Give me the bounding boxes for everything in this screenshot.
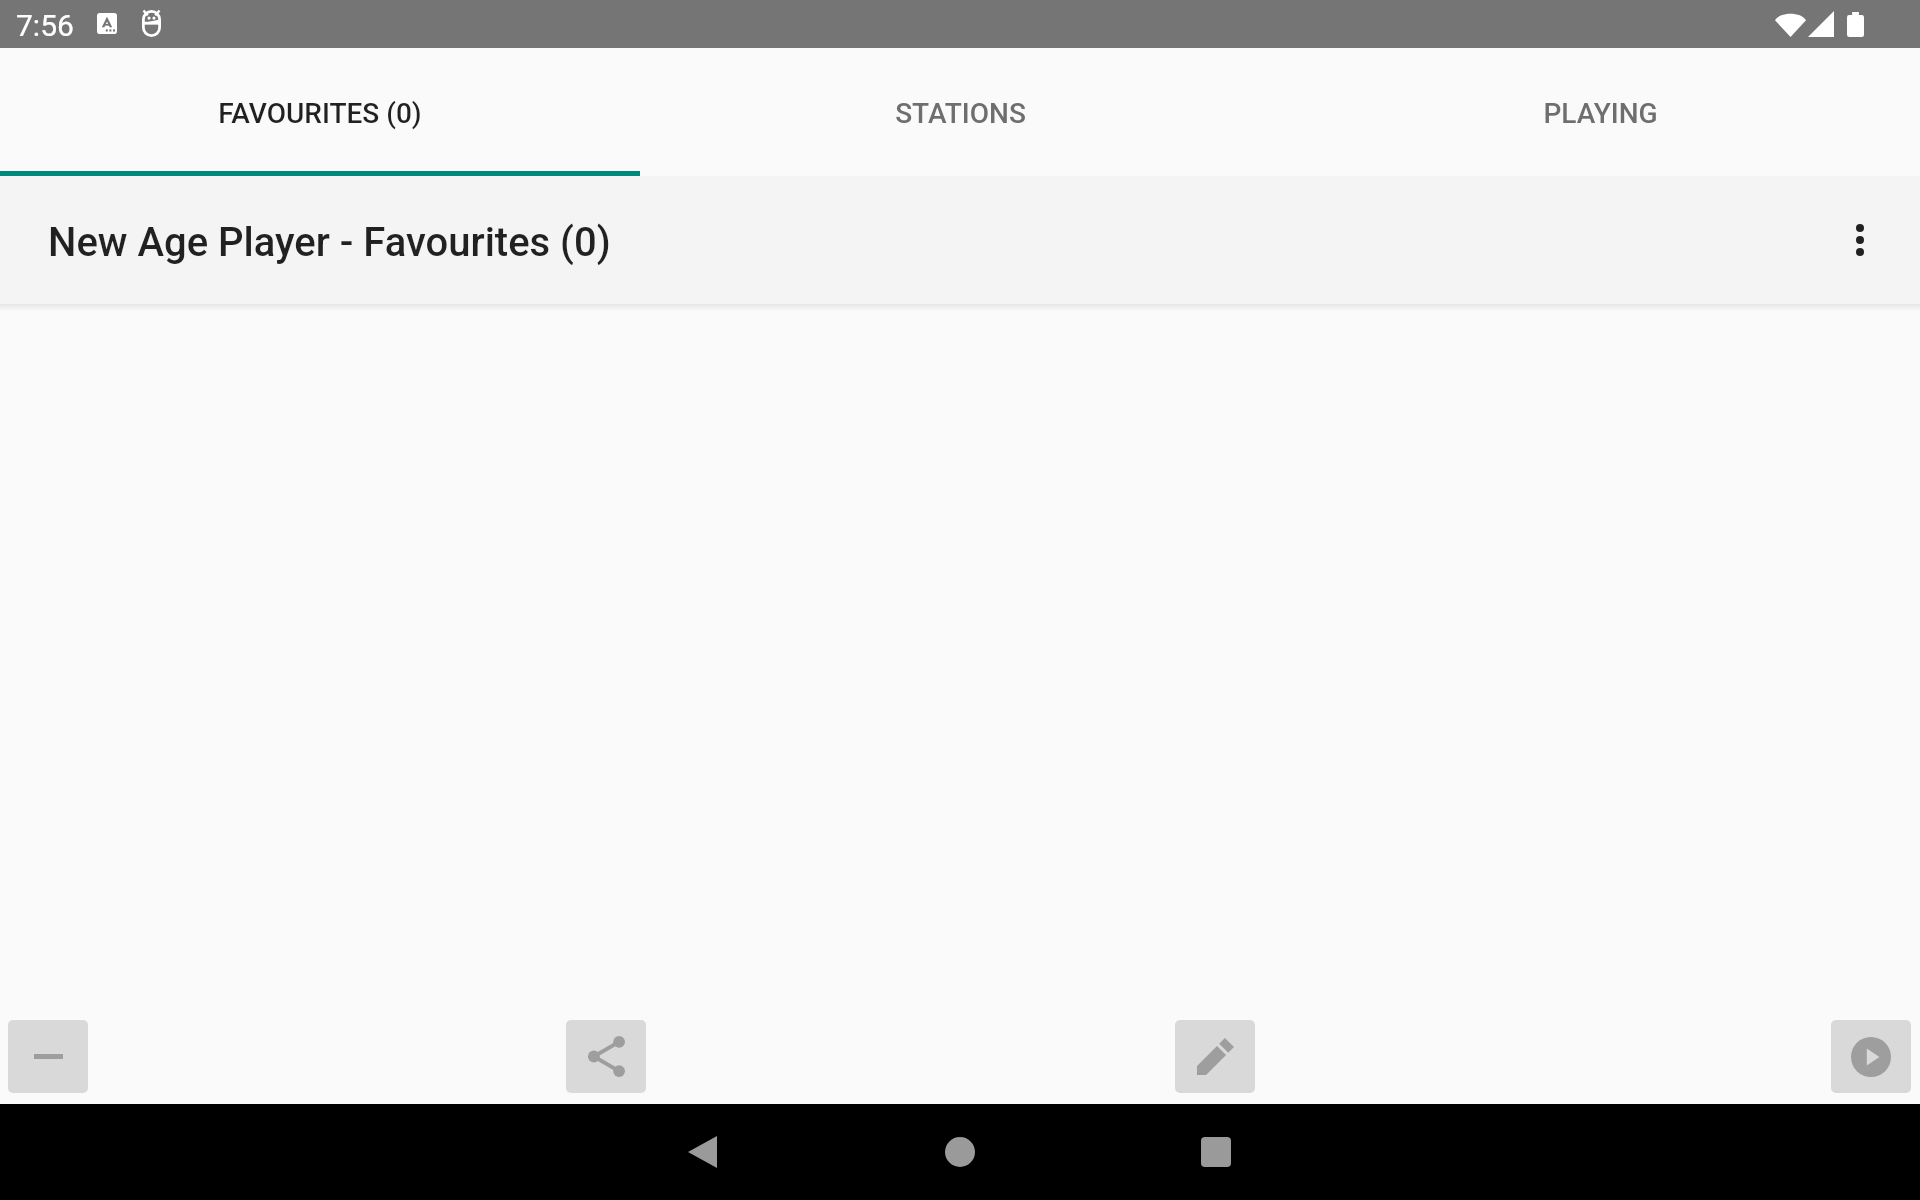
button[interactable]: Back <box>654 1104 750 1200</box>
button[interactable]: PLAYING <box>1280 48 1920 176</box>
staticText: STATIONS <box>895 97 1026 130</box>
button[interactable]: Home <box>912 1104 1008 1200</box>
button[interactable]: FAVOURITES (0) <box>0 48 640 176</box>
staticText: New Age Player - Favourites (0) <box>48 219 611 266</box>
staticText: FAVOURITES (0) <box>218 97 422 130</box>
button[interactable]: Edit <box>1175 1020 1255 1093</box>
button[interactable]: Collapse <box>8 1020 88 1093</box>
button[interactable]: Share <box>566 1020 646 1093</box>
staticText: PLAYING <box>1543 97 1658 130</box>
button[interactable]: Recent apps <box>1168 1104 1264 1200</box>
button[interactable]: STATIONS <box>640 48 1280 176</box>
button[interactable]: Play <box>1831 1020 1911 1093</box>
staticText: 7:56 <box>16 8 74 43</box>
button[interactable]: More options <box>1836 216 1884 264</box>
